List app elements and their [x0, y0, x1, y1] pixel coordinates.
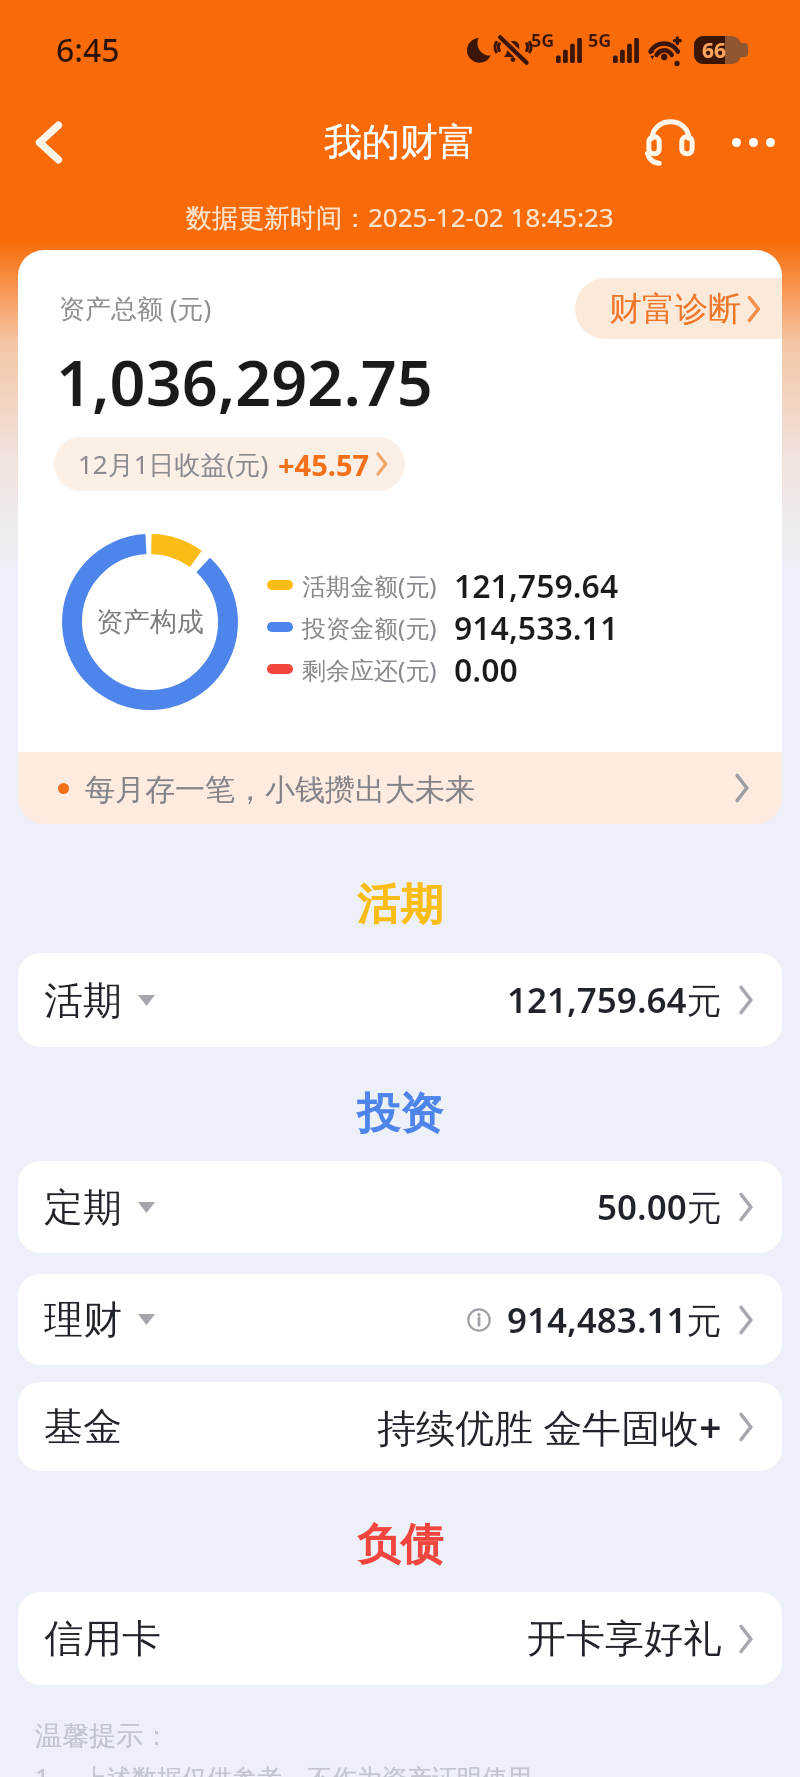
staticText: 资产构成	[96, 605, 204, 639]
staticText: 66	[702, 36, 727, 64]
staticText: 914,483.11元	[507, 1296, 722, 1344]
staticText: 6:45	[56, 28, 120, 72]
staticText: 开卡享好礼	[527, 1614, 722, 1663]
staticText: 1. 上述数据仅供参考，不作为资产证明使用	[35, 1760, 533, 1777]
staticText: 活期	[357, 878, 443, 932]
button[interactable]: 12月1日收益(元)	[54, 437, 405, 491]
staticText: 剩余应还(元)	[302, 653, 437, 686]
button[interactable]: 财富诊断	[575, 278, 782, 339]
button[interactable]: 每月存一笔，小钱攒出大未来	[18, 752, 782, 824]
staticText: 活期金额(元)	[302, 569, 437, 602]
button[interactable]: Customer service	[640, 109, 720, 175]
staticText: 0.00	[454, 648, 518, 690]
button[interactable]: Back	[18, 111, 80, 173]
staticText: +45.57	[278, 445, 370, 484]
staticText: 914,533.11	[454, 606, 619, 648]
staticText: 定期	[44, 1183, 122, 1232]
staticText: 投资	[357, 1087, 443, 1141]
button[interactable]: 定期	[18, 1161, 782, 1253]
staticText: 我的财富	[324, 118, 476, 166]
staticText: 财富诊断	[609, 288, 741, 330]
staticText: 投资金额(元)	[302, 611, 437, 644]
staticText: 持续优胜 金牛固收+	[377, 1400, 722, 1453]
button[interactable]: 理财	[18, 1274, 782, 1365]
button[interactable]: 基金	[18, 1382, 782, 1471]
button[interactable]: 信用卡	[18, 1592, 782, 1685]
staticText: 每月存一笔，小钱攒出大未来	[85, 771, 475, 809]
staticText: 5G	[588, 28, 612, 53]
staticText: 信用卡	[44, 1614, 161, 1663]
staticText: 资产总额 (元)	[59, 290, 212, 326]
staticText: 理财	[44, 1295, 122, 1344]
staticText: 温馨提示：	[35, 1719, 170, 1753]
staticText: 5G	[531, 28, 555, 53]
staticText: 数据更新时间：2025-12-02 18:45:23	[186, 199, 614, 235]
staticText: 负债	[357, 1518, 443, 1572]
button[interactable]: More options	[720, 109, 786, 175]
staticText: 基金	[44, 1402, 122, 1451]
staticText: 活期	[44, 976, 122, 1025]
button[interactable]: 活期	[18, 953, 782, 1047]
staticText: 1,036,292.75	[56, 339, 433, 425]
staticText: 121,759.64	[454, 564, 619, 606]
staticText: 121,759.64元	[507, 976, 722, 1024]
staticText: 12月1日收益(元)	[78, 446, 269, 482]
staticText: 50.00元	[597, 1183, 722, 1231]
